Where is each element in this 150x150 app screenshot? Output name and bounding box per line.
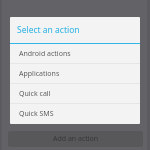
button[interactable]: Applications: [10, 64, 140, 83]
button[interactable]: Android actions: [10, 44, 140, 63]
staticText: Select an action: [17, 24, 80, 36]
button[interactable]: Quick SMS: [10, 104, 140, 123]
staticText: Android actions: [19, 49, 71, 59]
staticText: Quick call: [19, 89, 51, 99]
staticText: Quick SMS: [19, 109, 54, 119]
button[interactable]: Quick call: [10, 84, 140, 103]
staticText: Applications: [19, 69, 60, 79]
staticText: Add an action: [53, 134, 99, 144]
button[interactable]: Add an action: [8, 131, 143, 147]
